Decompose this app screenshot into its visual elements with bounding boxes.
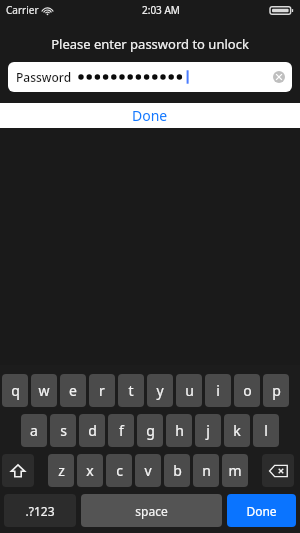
button[interactable]: c <box>106 454 132 487</box>
button[interactable]: m <box>222 454 248 487</box>
button[interactable]: .?123 <box>4 494 76 527</box>
staticText: z <box>58 461 65 480</box>
button[interactable]: q <box>2 374 28 407</box>
button[interactable]: h <box>166 414 192 447</box>
staticText: q <box>11 381 20 400</box>
staticText: e <box>69 381 77 400</box>
staticText: .?123 <box>25 503 55 519</box>
staticText: i <box>216 381 220 400</box>
button[interactable]: Clear text <box>271 69 287 85</box>
button[interactable]: j <box>195 414 221 447</box>
button[interactable]: o <box>234 374 260 407</box>
staticText: t <box>128 381 134 400</box>
staticText: b <box>173 461 182 480</box>
staticText: j <box>206 421 210 440</box>
staticText: s <box>60 421 67 440</box>
staticText: k <box>233 421 241 440</box>
staticText: h <box>175 421 184 440</box>
staticText: w <box>38 381 50 400</box>
staticText: a <box>30 421 38 440</box>
staticText: Password <box>16 69 72 85</box>
staticText: m <box>228 461 242 480</box>
staticText: c <box>116 461 123 480</box>
staticText: l <box>264 421 268 440</box>
staticText: r <box>99 381 105 400</box>
staticText: v <box>144 461 152 480</box>
button[interactable]: z <box>48 454 74 487</box>
button[interactable]: e <box>60 374 86 407</box>
button[interactable]: g <box>137 414 163 447</box>
button[interactable]: s <box>50 414 76 447</box>
button[interactable]: l <box>253 414 279 447</box>
button[interactable]: Done <box>0 103 300 128</box>
staticText: Carrier <box>6 3 39 17</box>
staticText: d <box>88 421 97 440</box>
button[interactable]: Backspace <box>262 454 294 487</box>
button[interactable]: Done <box>227 494 296 527</box>
staticText: y <box>156 381 164 400</box>
button[interactable]: r <box>89 374 115 407</box>
button[interactable]: Shift <box>2 454 34 487</box>
button[interactable]: a <box>21 414 47 447</box>
button[interactable]: d <box>79 414 105 447</box>
button[interactable]: x <box>77 454 103 487</box>
staticText: u <box>185 381 194 400</box>
button[interactable]: u <box>176 374 202 407</box>
staticText: x <box>86 461 94 480</box>
button[interactable]: w <box>31 374 57 407</box>
staticText: 2:03 AM <box>142 3 180 17</box>
staticText: g <box>146 421 155 440</box>
staticText: p <box>272 381 281 400</box>
button[interactable]: p <box>263 374 289 407</box>
button[interactable]: v <box>135 454 161 487</box>
staticText: o <box>243 381 252 400</box>
button[interactable]: space <box>81 494 222 527</box>
staticText: Done <box>132 106 168 125</box>
staticText: Done <box>246 503 277 519</box>
staticText: Please enter password to unlock <box>0 35 300 53</box>
button[interactable]: Password <box>8 62 292 92</box>
staticText: n <box>202 461 211 480</box>
button[interactable]: i <box>205 374 231 407</box>
button[interactable]: n <box>193 454 219 487</box>
button[interactable]: k <box>224 414 250 447</box>
button[interactable]: f <box>108 414 134 447</box>
staticText: f <box>119 421 124 440</box>
button[interactable]: t <box>118 374 144 407</box>
staticText: space <box>135 503 168 519</box>
button[interactable]: b <box>164 454 190 487</box>
button[interactable]: y <box>147 374 173 407</box>
